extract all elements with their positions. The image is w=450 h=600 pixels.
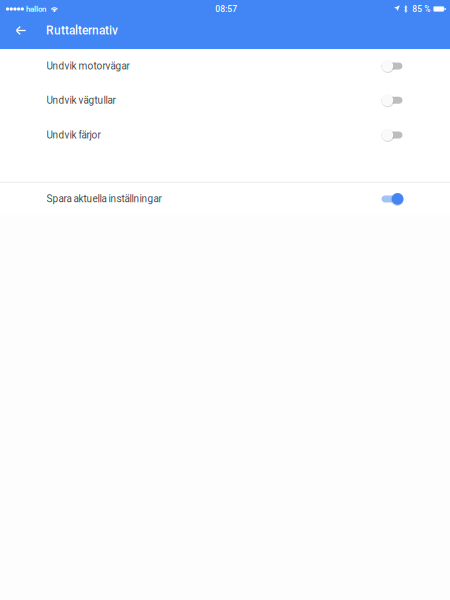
staticText: Undvik vägtullar xyxy=(46,94,115,106)
button[interactable]: Undvik vägtullar xyxy=(0,83,450,117)
button[interactable]: Back xyxy=(8,18,34,43)
button[interactable]: Spara aktuella inställningar xyxy=(0,183,450,215)
staticText: 08:57 xyxy=(215,4,237,14)
staticText: 85 % xyxy=(412,4,430,14)
staticText: Undvik motorvägar xyxy=(46,60,129,72)
staticText: Ruttalternativ xyxy=(46,23,118,38)
staticText: Spara aktuella inställningar xyxy=(46,193,161,205)
staticText: Undvik färjor xyxy=(46,129,100,141)
button[interactable]: Undvik färjor xyxy=(0,117,450,152)
staticText: hallon xyxy=(26,4,46,14)
button[interactable]: Undvik motorvägar xyxy=(0,49,450,83)
